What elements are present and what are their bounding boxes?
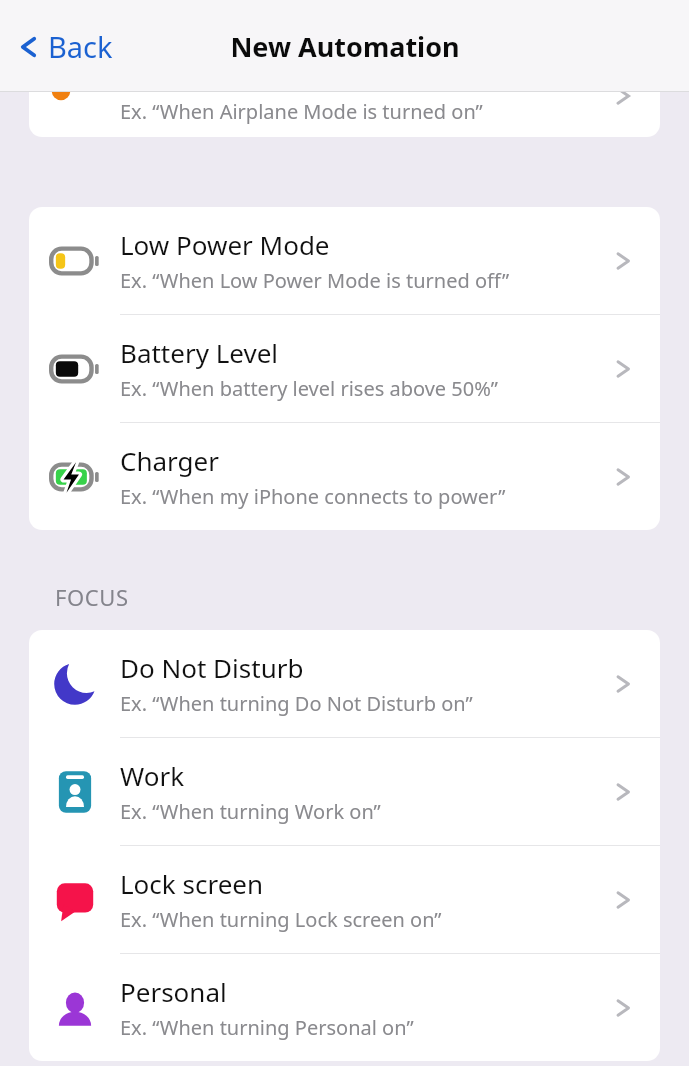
staticText: FOCUS bbox=[55, 582, 129, 612]
button[interactable]: Back bbox=[10, 19, 119, 74]
button[interactable]: Lock screen bbox=[29, 846, 660, 954]
staticText: Ex. “When my iPhone connects to power” bbox=[120, 483, 506, 510]
staticText: Lock screen bbox=[120, 866, 264, 901]
staticText: Low Power Mode bbox=[120, 227, 330, 262]
staticText: Ex. “When turning Lock screen on” bbox=[120, 906, 442, 933]
staticText: New Automation bbox=[230, 28, 460, 65]
staticText: Battery Level bbox=[120, 335, 279, 370]
staticText: Ex. “When turning Personal on” bbox=[120, 1014, 414, 1041]
staticText: Work bbox=[120, 758, 185, 793]
staticText: Ex. “When turning Do Not Disturb on” bbox=[120, 690, 473, 717]
button[interactable]: Low Power Mode bbox=[29, 207, 660, 315]
staticText: Personal bbox=[120, 974, 227, 1009]
staticText: Ex. “When turning Work on” bbox=[120, 798, 381, 825]
staticText: Ex. “When Low Power Mode is turned off” bbox=[120, 267, 510, 294]
staticText: Back bbox=[48, 27, 113, 66]
button[interactable]: Personal bbox=[29, 954, 660, 1061]
staticText: Charger bbox=[120, 443, 219, 478]
staticText: Ex. “When Airplane Mode is turned on” bbox=[120, 98, 483, 125]
staticText: Do Not Disturb bbox=[120, 650, 304, 685]
button[interactable]: Ex. “When Airplane Mode is turned on” bbox=[29, 92, 660, 137]
button[interactable]: Charger bbox=[29, 423, 660, 530]
button[interactable]: Work bbox=[29, 738, 660, 846]
staticText: Ex. “When battery level rises above 50%” bbox=[120, 375, 498, 402]
button[interactable]: Do Not Disturb bbox=[29, 630, 660, 738]
button[interactable]: Battery Level bbox=[29, 315, 660, 423]
